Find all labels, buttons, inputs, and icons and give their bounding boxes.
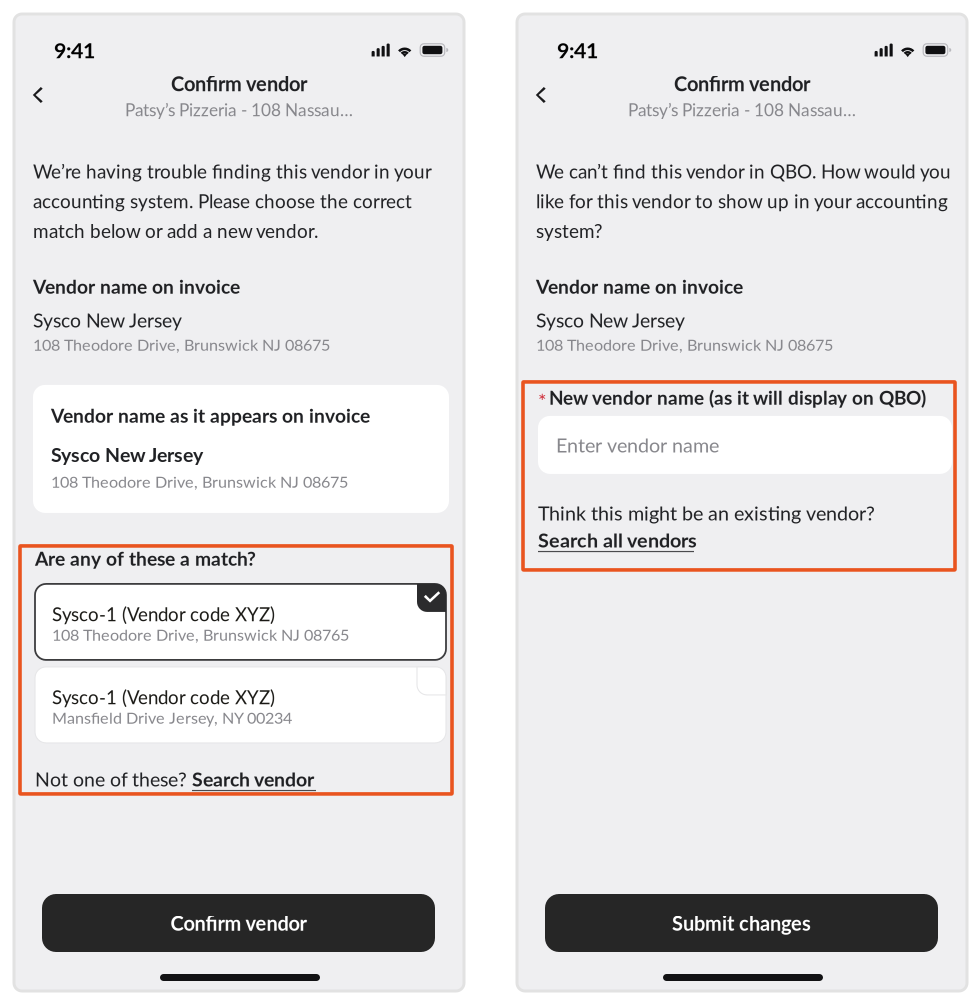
staticText: Patsy’s Pizzeria - 108 Nassau… [628, 99, 856, 120]
staticText: Confirm vendor [170, 911, 306, 935]
button[interactable]: Confirm vendor [42, 894, 435, 952]
staticText: Think this might be an existing vendor? [538, 501, 875, 525]
staticText: Sysco-1 (Vendor code XYZ) [52, 603, 275, 625]
staticText: 108 Theodore Drive, Brunswick NJ 08765 [52, 625, 349, 644]
staticText: Search vendor [192, 767, 314, 791]
staticText: Confirm vendor [674, 71, 810, 95]
button[interactable]: Sysco-1 (Vendor code XYZ) [35, 584, 446, 660]
button[interactable]: Search vendor [192, 769, 316, 791]
button[interactable]: Back [14, 79, 63, 111]
staticText: Confirm vendor [171, 71, 307, 95]
staticText: 108 Theodore Drive, Brunswick NJ 08675 [536, 335, 833, 354]
staticText: Submit changes [672, 911, 811, 935]
staticText: 9:41 [557, 37, 598, 63]
staticText: New vendor name (as it will display on Q… [549, 386, 926, 409]
staticText: Vendor name on invoice [536, 275, 743, 298]
button[interactable]: Search all vendors [538, 530, 697, 552]
staticText: Sysco New Jersey [536, 308, 685, 331]
staticText: Sysco-1 (Vendor code XYZ) [52, 686, 275, 708]
button[interactable]: Back [517, 79, 566, 111]
staticText: Search all vendors [538, 528, 697, 552]
staticText: 108 Theodore Drive, Brunswick NJ 08675 [33, 335, 330, 354]
staticText: Are any of these a match? [35, 547, 256, 570]
staticText: Vendor name on invoice [33, 275, 240, 298]
button[interactable]: Enter vendor name [538, 416, 952, 474]
staticText: Not one of these? [35, 767, 187, 791]
staticText: We’re having trouble finding this vendor… [33, 160, 431, 242]
button[interactable]: Sysco-1 (Vendor code XYZ) [35, 667, 446, 743]
staticText: * [538, 388, 547, 412]
staticText: Vendor name as it appears on invoice [51, 404, 370, 427]
staticText: We can’t find this vendor in QBO. How wo… [536, 160, 951, 242]
staticText: Sysco New Jersey [51, 443, 203, 466]
staticText: Patsy’s Pizzeria - 108 Nassau… [125, 99, 353, 120]
staticText: Enter vendor name [556, 433, 719, 457]
button[interactable]: Submit changes [545, 894, 938, 952]
staticText: 108 Theodore Drive, Brunswick NJ 08675 [51, 472, 348, 491]
staticText: 9:41 [54, 37, 95, 63]
staticText: Sysco New Jersey [33, 308, 182, 331]
staticText: Mansfield Drive Jersey, NY 00234 [52, 708, 292, 727]
